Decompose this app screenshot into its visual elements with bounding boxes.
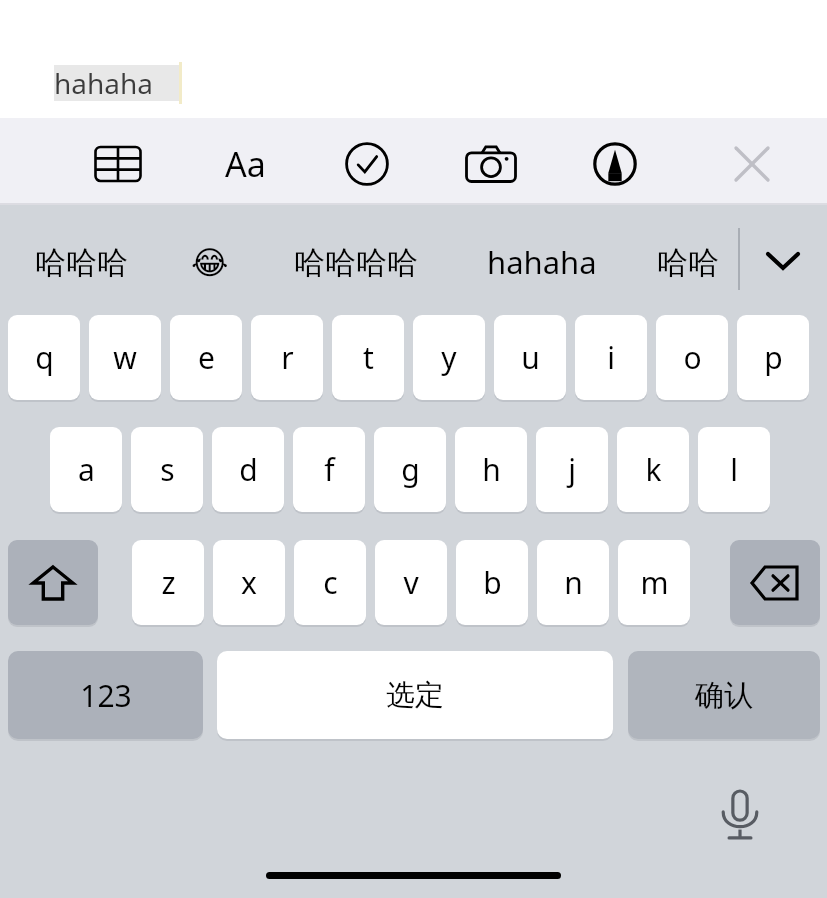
button[interactable]: s bbox=[131, 427, 203, 512]
staticText: h bbox=[482, 449, 501, 490]
staticText: r bbox=[281, 337, 294, 378]
button[interactable]: 123 bbox=[8, 651, 203, 739]
button[interactable]: Markup bbox=[585, 140, 645, 188]
button[interactable]: i bbox=[575, 315, 647, 400]
button[interactable]: t bbox=[332, 315, 404, 400]
staticText: hahaha bbox=[54, 64, 154, 102]
staticText: j bbox=[568, 449, 576, 490]
staticText: y bbox=[441, 337, 457, 378]
staticText: l bbox=[730, 449, 738, 490]
staticText: q bbox=[35, 337, 54, 378]
staticText: o bbox=[683, 337, 702, 378]
staticText: t bbox=[363, 337, 374, 378]
button[interactable]: hahaha bbox=[54, 63, 184, 103]
button[interactable]: f bbox=[293, 427, 365, 512]
button[interactable]: 哈哈哈 bbox=[14, 238, 149, 286]
staticText: 😂 bbox=[191, 244, 229, 281]
staticText: 哈哈哈哈 bbox=[294, 243, 418, 282]
button[interactable]: p bbox=[737, 315, 809, 400]
staticText: e bbox=[198, 337, 215, 378]
button[interactable]: o bbox=[656, 315, 728, 400]
staticText: hahaha bbox=[487, 241, 597, 283]
button[interactable]: d bbox=[212, 427, 284, 512]
staticText: k bbox=[645, 449, 662, 490]
staticText: 确认 bbox=[695, 677, 753, 714]
staticText: 哈哈哈 bbox=[35, 243, 128, 282]
button[interactable]: v bbox=[375, 540, 447, 625]
button[interactable]: g bbox=[374, 427, 446, 512]
button[interactable]: 选定 bbox=[217, 651, 613, 739]
staticText: v bbox=[403, 562, 419, 603]
button[interactable]: Text format bbox=[214, 140, 276, 188]
button[interactable]: u bbox=[494, 315, 566, 400]
button[interactable]: 😂 bbox=[180, 238, 240, 286]
button[interactable]: 确认 bbox=[628, 651, 820, 739]
staticText: z bbox=[161, 562, 176, 603]
staticText: b bbox=[483, 562, 502, 603]
staticText: 哈哈 bbox=[657, 243, 719, 282]
button[interactable]: m bbox=[618, 540, 690, 625]
staticText: w bbox=[113, 337, 137, 378]
button[interactable]: z bbox=[132, 540, 204, 625]
staticText: a bbox=[78, 449, 95, 490]
button[interactable]: c bbox=[294, 540, 366, 625]
button[interactable]: a bbox=[50, 427, 122, 512]
button[interactable]: y bbox=[413, 315, 485, 400]
staticText: m bbox=[640, 562, 669, 603]
button[interactable]: h bbox=[455, 427, 527, 512]
button[interactable]: Shift bbox=[8, 540, 98, 625]
button[interactable]: k bbox=[617, 427, 689, 512]
button[interactable]: Camera bbox=[460, 140, 522, 188]
staticText: f bbox=[324, 449, 335, 490]
button[interactable]: hahaha bbox=[472, 238, 612, 286]
button[interactable]: Backspace bbox=[730, 540, 820, 625]
button[interactable]: w bbox=[89, 315, 161, 400]
button[interactable]: j bbox=[536, 427, 608, 512]
staticText: 123 bbox=[80, 675, 132, 716]
button[interactable]: b bbox=[456, 540, 528, 625]
button[interactable]: l bbox=[698, 427, 770, 512]
staticText: p bbox=[764, 337, 783, 378]
staticText: d bbox=[239, 449, 258, 490]
button[interactable]: r bbox=[251, 315, 323, 400]
button[interactable]: Dictation bbox=[706, 781, 774, 849]
staticText: 选定 bbox=[386, 677, 444, 714]
button[interactable]: 哈哈 bbox=[640, 238, 736, 286]
button[interactable]: n bbox=[537, 540, 609, 625]
staticText: u bbox=[521, 337, 540, 378]
staticText: i bbox=[607, 337, 615, 378]
staticText: c bbox=[323, 562, 338, 603]
staticText: g bbox=[401, 449, 420, 490]
staticText: x bbox=[241, 562, 257, 603]
button[interactable]: Close bbox=[722, 140, 782, 188]
staticText: Aa bbox=[225, 141, 266, 187]
staticText: n bbox=[564, 562, 583, 603]
staticText: s bbox=[160, 449, 175, 490]
button[interactable]: Insert table bbox=[88, 140, 148, 188]
button[interactable]: x bbox=[213, 540, 285, 625]
button[interactable]: 哈哈哈哈 bbox=[270, 238, 442, 286]
button[interactable]: Checklist bbox=[337, 140, 397, 188]
button[interactable]: Expand candidates bbox=[752, 234, 814, 288]
button[interactable]: q bbox=[8, 315, 80, 400]
button[interactable]: e bbox=[170, 315, 242, 400]
